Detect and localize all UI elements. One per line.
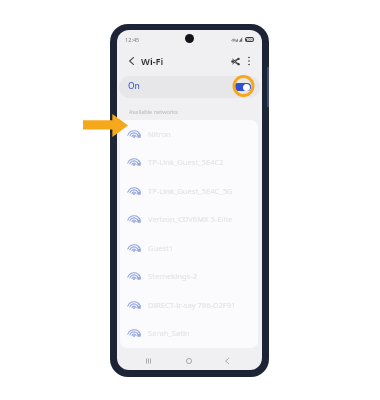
- staticText: TP-Link_Guest_5E4C2: [148, 157, 224, 167]
- button[interactable]: Back: [125, 55, 137, 67]
- button[interactable]: TP-Link_Guest_5E4C_5G: [120, 177, 258, 205]
- button[interactable]: Wi-Fi Direct: [229, 55, 241, 67]
- staticText: Verizon_CDV6MX 5-Elite: [148, 214, 233, 224]
- button[interactable]: Guest1: [120, 234, 258, 262]
- staticText: TP-Link_Guest_5E4C_5G: [148, 186, 233, 196]
- staticText: Nitron: [148, 129, 171, 139]
- staticText: Wi-Fi: [141, 55, 164, 68]
- staticText: 100: [246, 37, 253, 42]
- staticText: Available networks: [129, 108, 178, 115]
- button[interactable]: On: [119, 76, 260, 98]
- staticText: Sarah_Satin: [148, 328, 190, 338]
- button[interactable]: TP-Link_Guest_5E4C2: [120, 148, 258, 176]
- button[interactable]: Sarah_Satin: [120, 319, 258, 347]
- staticText: Guest1: [148, 243, 174, 253]
- button[interactable]: Sternekings-2: [120, 262, 258, 290]
- button[interactable]: Recent apps: [138, 350, 158, 370]
- button[interactable]: Home: [179, 350, 199, 370]
- button[interactable]: Back: [217, 350, 237, 370]
- staticText: DIRECT-ir-say 786-D2F91: [148, 300, 236, 310]
- button[interactable]: Nitron: [120, 120, 258, 148]
- button[interactable]: More options: [243, 55, 255, 67]
- staticText: 12:45: [125, 36, 140, 44]
- staticText: Sternekings-2: [148, 271, 198, 281]
- staticText: On: [128, 80, 140, 91]
- button[interactable]: Verizon_CDV6MX 5-Elite: [120, 205, 258, 233]
- button[interactable]: DIRECT-ir-say 786-D2F91: [120, 291, 258, 319]
